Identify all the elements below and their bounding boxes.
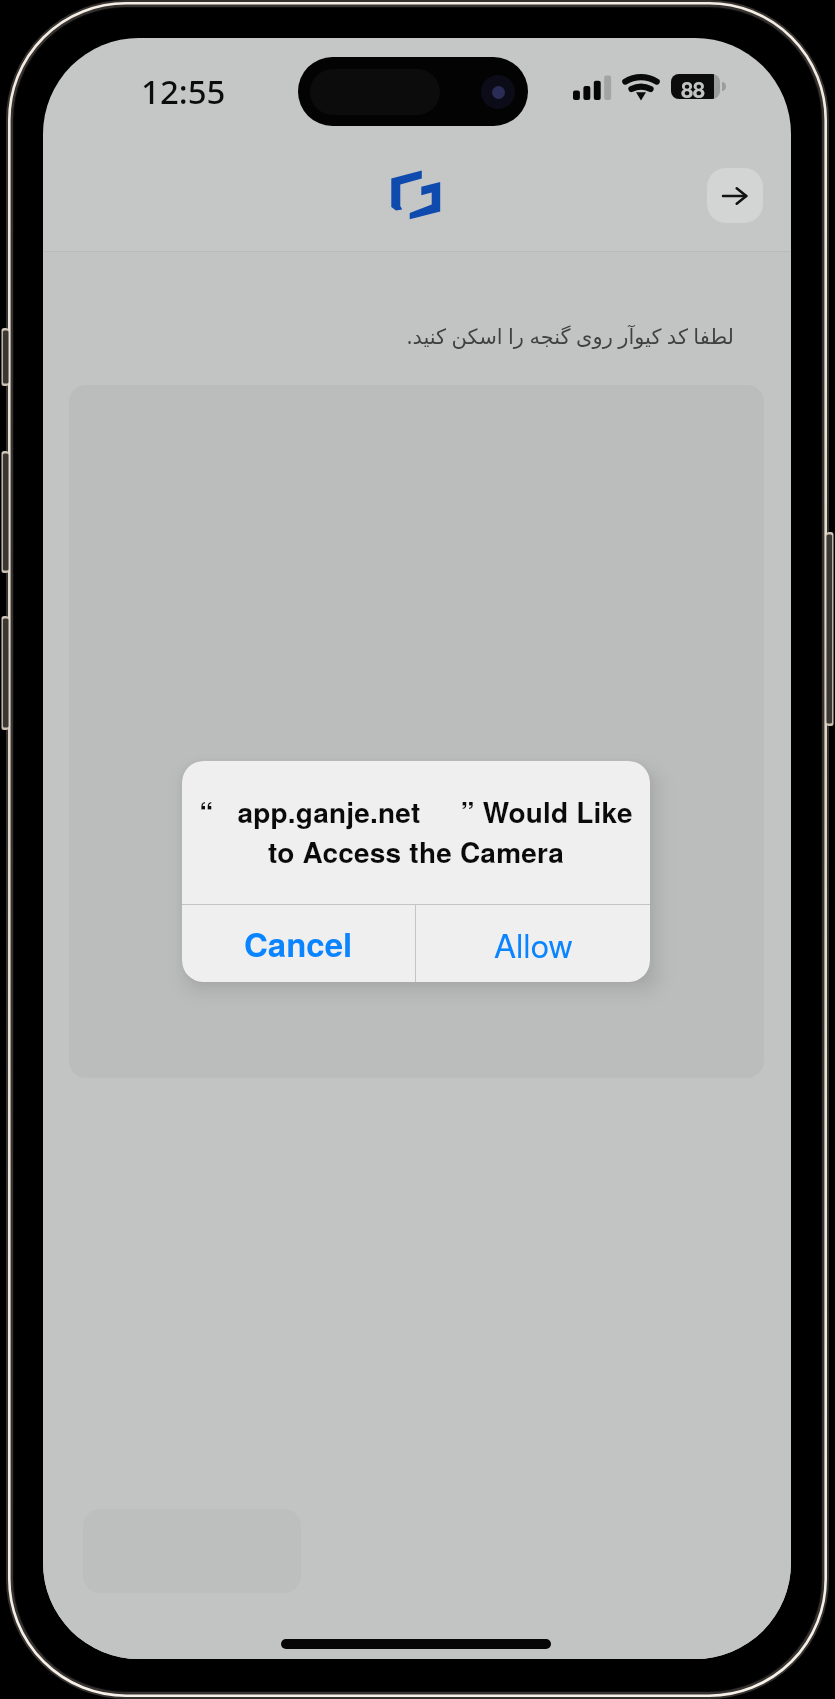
staticText: لطفا کد کیوآر روی گنجه را اسکن کنید. xyxy=(43,322,734,351)
staticText: 88 xyxy=(681,74,705,98)
button[interactable]: Allow xyxy=(416,905,650,982)
staticText: Allow xyxy=(494,920,573,967)
button[interactable]: Ganje home xyxy=(391,170,441,220)
staticText: “ app.ganje.net ” Would Like to Access t… xyxy=(199,791,633,872)
staticText: Cancel xyxy=(244,920,353,967)
button[interactable]: Cancel xyxy=(182,905,415,982)
staticText: 12:55 xyxy=(141,69,226,114)
button[interactable]: Next xyxy=(707,168,763,223)
